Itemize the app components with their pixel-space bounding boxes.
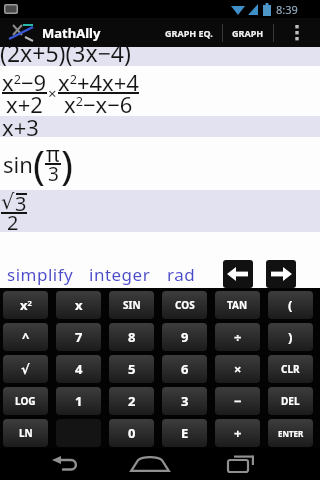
button[interactable] bbox=[209, 448, 273, 480]
staticText: π bbox=[46, 140, 60, 169]
staticText: simplify bbox=[7, 263, 74, 286]
staticText: ( bbox=[288, 296, 293, 314]
staticText: 3 bbox=[15, 190, 27, 217]
button[interactable]: LN bbox=[3, 419, 48, 447]
button[interactable]: GRAPH bbox=[223, 18, 273, 47]
staticText: (2x+5)(3x−4) bbox=[0, 47, 131, 66]
staticText: GRAPH bbox=[232, 27, 264, 39]
button[interactable]: CLR bbox=[268, 355, 313, 383]
staticText: 3 bbox=[181, 392, 189, 410]
staticText: ) bbox=[288, 328, 293, 346]
staticText: 6 bbox=[181, 360, 189, 378]
staticText: GRAPH EQ. bbox=[165, 27, 213, 39]
staticText: × bbox=[48, 83, 57, 103]
button[interactable]: 9 bbox=[162, 323, 207, 351]
button[interactable]: rad bbox=[167, 263, 196, 286]
button[interactable]: 0 bbox=[109, 419, 154, 447]
button[interactable]: ) bbox=[268, 323, 313, 351]
button[interactable]: simplify bbox=[7, 263, 74, 286]
staticText: + bbox=[234, 424, 242, 442]
button[interactable]: 6 bbox=[162, 355, 207, 383]
staticText: E bbox=[181, 424, 189, 442]
button[interactable] bbox=[266, 260, 296, 288]
button[interactable]: LOG bbox=[3, 387, 48, 415]
button[interactable]: E bbox=[162, 419, 207, 447]
staticText: × bbox=[234, 360, 242, 378]
staticText: 2 bbox=[128, 392, 136, 410]
button[interactable]: TAN bbox=[215, 291, 260, 319]
staticText: 0 bbox=[128, 424, 136, 442]
staticText: LOG bbox=[15, 394, 36, 408]
staticText: CLR bbox=[281, 362, 300, 376]
button[interactable]: ^ bbox=[3, 323, 48, 351]
staticText: COS bbox=[175, 298, 195, 312]
button[interactable]: COS bbox=[162, 291, 207, 319]
staticText: 8:39 bbox=[276, 2, 298, 17]
button[interactable]: 3 bbox=[162, 387, 207, 415]
button[interactable]: × bbox=[215, 355, 260, 383]
staticText: SIN bbox=[123, 298, 141, 312]
staticText: 5 bbox=[128, 360, 136, 378]
staticText: 9 bbox=[181, 328, 189, 346]
button[interactable]: 4 bbox=[56, 355, 101, 383]
staticText: integer bbox=[89, 263, 151, 286]
button[interactable]: √ bbox=[3, 355, 48, 383]
staticText: LN bbox=[19, 426, 33, 440]
button[interactable]: 8 bbox=[109, 323, 154, 351]
staticText: TAN bbox=[227, 298, 248, 312]
staticText: x bbox=[75, 296, 83, 314]
staticText: x+3 bbox=[2, 112, 39, 142]
staticText: 2 bbox=[7, 209, 19, 236]
staticText: − bbox=[234, 392, 242, 410]
staticText: √ bbox=[21, 362, 30, 377]
staticText: 3 bbox=[48, 161, 59, 187]
button[interactable]: 1 bbox=[56, 387, 101, 415]
staticText: 4 bbox=[75, 360, 83, 378]
button[interactable]: DEL bbox=[268, 387, 313, 415]
button[interactable]: 2 bbox=[109, 387, 154, 415]
staticText: x2−9 bbox=[2, 67, 47, 97]
staticText: sin bbox=[3, 149, 33, 179]
button[interactable]: integer bbox=[89, 263, 151, 286]
button[interactable]: GRAPH EQ. bbox=[156, 18, 222, 47]
button[interactable] bbox=[34, 448, 98, 480]
staticText: rad bbox=[167, 263, 196, 286]
button[interactable]: SIN bbox=[109, 291, 154, 319]
button[interactable] bbox=[118, 448, 182, 480]
staticText: DEL bbox=[281, 394, 300, 408]
staticText: x+2 bbox=[6, 89, 43, 119]
button[interactable]: ENTER bbox=[268, 419, 313, 447]
button[interactable]: x bbox=[56, 291, 101, 319]
staticText: MathAlly bbox=[42, 24, 101, 42]
button[interactable]: 5 bbox=[109, 355, 154, 383]
staticText: 1 bbox=[75, 392, 83, 410]
staticText: x2 bbox=[20, 296, 32, 314]
button[interactable]: ÷ bbox=[215, 323, 260, 351]
staticText: x2−x−6 bbox=[64, 89, 133, 119]
button[interactable] bbox=[223, 260, 253, 288]
button[interactable] bbox=[274, 18, 320, 47]
button[interactable]: + bbox=[215, 419, 260, 447]
button[interactable]: − bbox=[215, 387, 260, 415]
staticText: √ bbox=[1, 190, 15, 214]
button[interactable]: 7 bbox=[56, 323, 101, 351]
staticText: 8 bbox=[128, 328, 136, 346]
staticText: 7 bbox=[75, 328, 83, 346]
staticText: ENTER bbox=[278, 428, 304, 439]
staticText: ) bbox=[61, 137, 73, 191]
staticText: ( bbox=[33, 137, 45, 191]
button[interactable]: x2 bbox=[3, 291, 48, 319]
staticText: ÷ bbox=[234, 328, 242, 346]
staticText: ^ bbox=[22, 328, 30, 346]
staticText: x2+4x+4 bbox=[58, 67, 139, 97]
button[interactable]: ( bbox=[268, 291, 313, 319]
